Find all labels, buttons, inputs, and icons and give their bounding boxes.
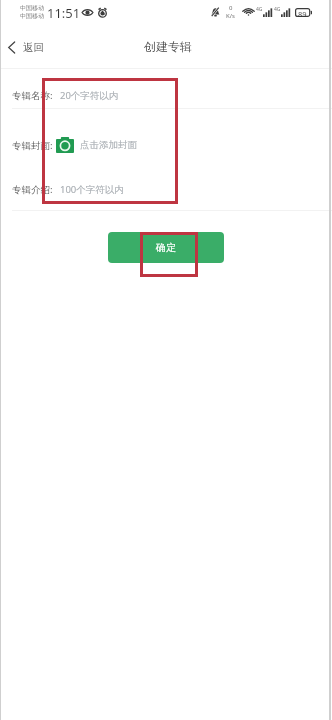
staticText: 中国移动 xyxy=(20,4,44,12)
staticText: 4G xyxy=(256,6,263,13)
staticText: 确定 xyxy=(156,241,176,254)
staticText: 创建专辑 xyxy=(144,39,192,54)
staticText: 100个字符以内 xyxy=(60,183,124,196)
button[interactable]: 确定 xyxy=(108,232,224,263)
staticText: 专辑介绍: xyxy=(12,183,53,196)
staticText: 专辑名称: xyxy=(12,89,53,102)
staticText: 89 xyxy=(298,9,307,19)
button[interactable]: 返回 xyxy=(8,26,44,68)
button[interactable]: 专辑封面: xyxy=(12,111,332,179)
staticText: K/s xyxy=(226,12,235,20)
staticText: 4G xyxy=(274,6,281,13)
staticText: 11:51 xyxy=(47,4,81,22)
staticText: 0 xyxy=(229,4,233,12)
staticText: 专辑封面: xyxy=(12,139,53,152)
staticText: 20个字符以内 xyxy=(60,89,119,102)
staticText: 点击添加封面 xyxy=(80,139,137,151)
button[interactable]: 专辑名称: xyxy=(12,76,332,114)
other: 添加封面 xyxy=(56,137,74,153)
staticText: 返回 xyxy=(23,41,44,54)
button[interactable]: 专辑介绍: xyxy=(12,170,332,208)
staticText: 中国移动 xyxy=(20,12,44,20)
